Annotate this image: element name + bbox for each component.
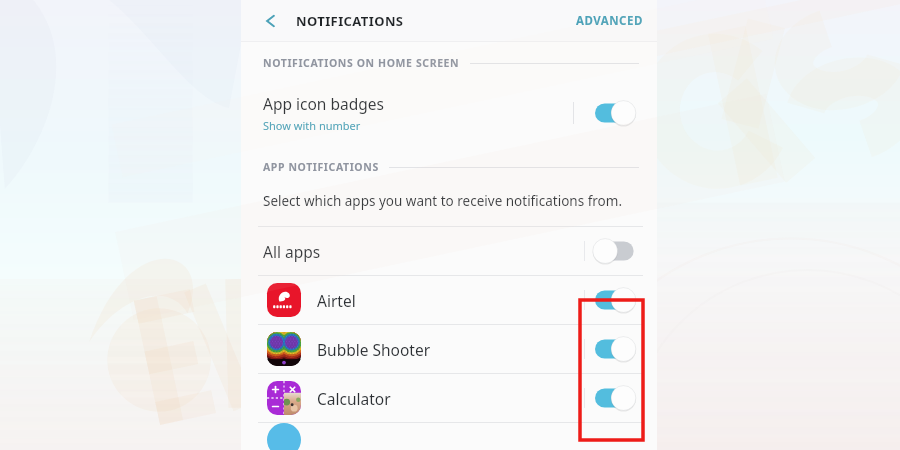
button[interactable]: Airtel: [241, 276, 657, 324]
staticText: NOTIFICATIONS ON HOME SCREEN: [263, 56, 460, 70]
button[interactable]: Calculator: [241, 374, 657, 422]
staticText: ADVANCED: [576, 13, 643, 29]
button[interactable]: [241, 423, 657, 435]
staticText: Airtel: [317, 290, 356, 311]
button[interactable]: Bubble Shooter: [241, 325, 657, 373]
staticText: App icon badges: [263, 93, 384, 114]
staticText: All apps: [263, 241, 321, 262]
button[interactable]: All apps: [241, 227, 657, 275]
button[interactable]: App icon badges: [241, 90, 657, 136]
staticText: NOTIFICATIONS: [296, 12, 404, 30]
button[interactable]: Back: [253, 4, 287, 38]
staticText: APP NOTIFICATIONS: [263, 160, 379, 174]
button[interactable]: ADVANCED: [562, 5, 657, 37]
staticText: Bubble Shooter: [317, 339, 431, 360]
staticText: Calculator: [317, 388, 391, 409]
staticText: Select which apps you want to receive no…: [263, 192, 623, 210]
staticText: Show with number: [263, 118, 361, 133]
